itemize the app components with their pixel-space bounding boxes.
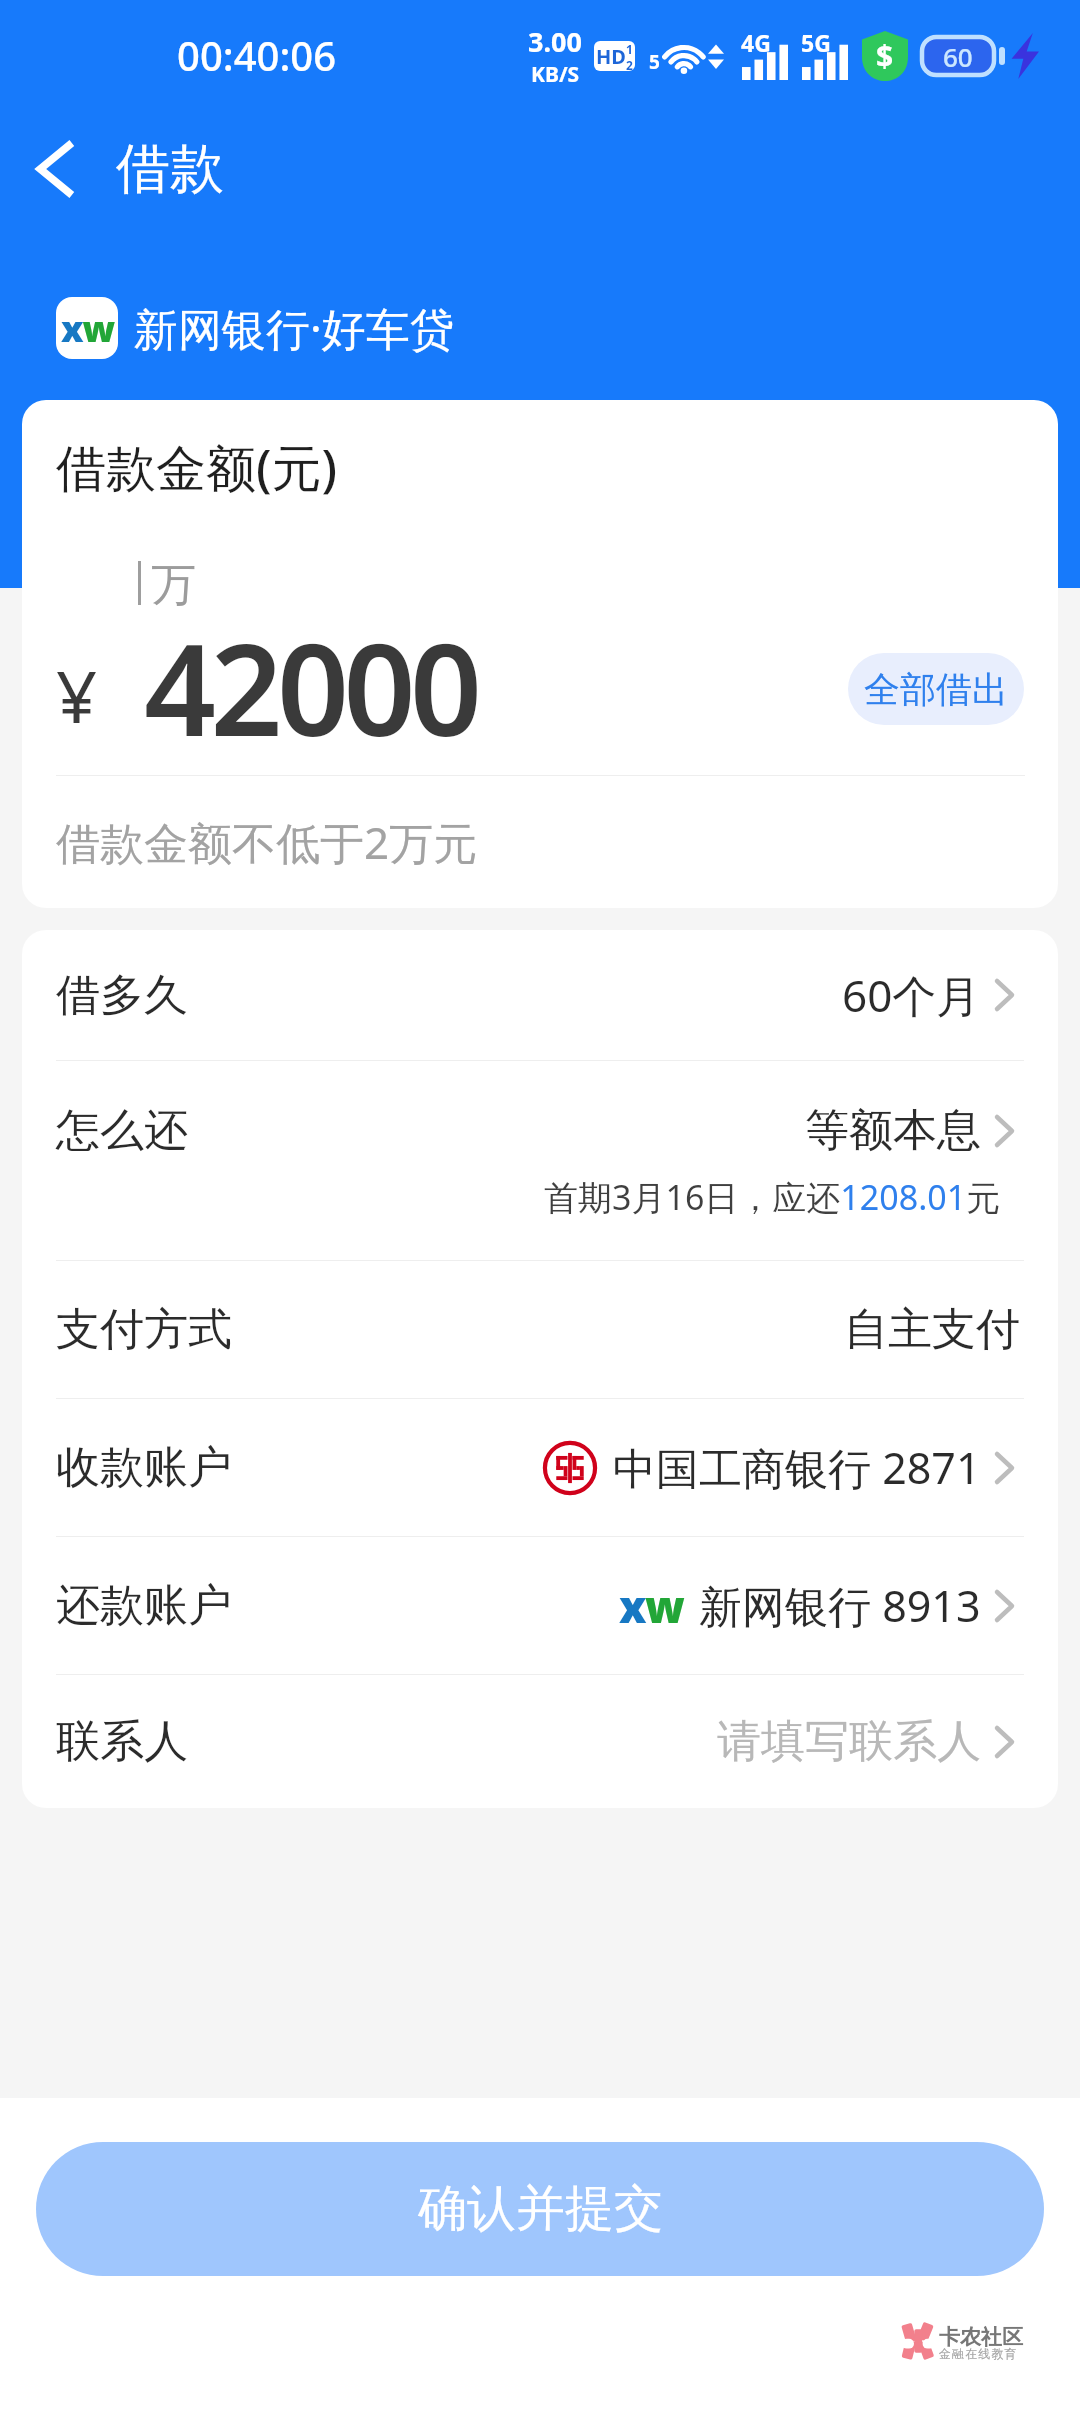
staticText: xw [61,304,114,353]
staticText: 60个月 [842,965,981,1025]
staticText: HD [596,43,626,70]
staticText: 5G [801,27,831,58]
staticText: 万 [151,557,196,614]
staticText: 2 [626,57,633,71]
staticText: 自主支付 [844,1302,1020,1357]
button[interactable]: 确认并提交 [36,2142,1044,2276]
staticText: 借款 [116,135,224,203]
staticText: 还款账户 [56,1578,232,1633]
staticText: 卡农社区 [939,2324,1023,2350]
button[interactable]: 借多久 [56,930,1024,1060]
staticText: 3.00 [528,23,582,60]
staticText: 60 [943,39,973,74]
button[interactable]: 全部借出 [848,653,1024,725]
button[interactable]: Back [0,105,112,233]
staticText: 确认并提交 [418,2178,663,2240]
staticText: 联系人 [56,1714,188,1769]
staticText: 借款金额(元) [56,433,338,501]
button[interactable]: 怎么还 [56,1061,1024,1260]
staticText: 收款账户 [56,1440,232,1495]
staticText: 00:40:06 [177,28,337,82]
staticText: $ [876,35,894,76]
staticText: 新网银行 8913 [699,1576,981,1635]
button[interactable]: 支付方式 [56,1261,1024,1398]
staticText: 4G [741,27,771,58]
button[interactable]: 还款账户 [56,1537,1024,1674]
staticText: 首期3月16日，应还1208.01元 [544,1174,1001,1220]
staticText: xw [619,1576,684,1635]
staticText: 等额本息 [805,1103,981,1158]
staticText: 5 [649,49,660,75]
staticText: 借多久 [56,968,188,1023]
button[interactable]: 收款账户 [56,1399,1024,1536]
staticText: 支付方式 [56,1302,232,1357]
staticText: 金融在线教育 [939,2346,1018,2361]
staticText: 借款金额不低于2万元 [56,812,478,872]
staticText: 怎么还 [56,1103,188,1158]
staticText: 请填写联系人 [717,1714,981,1769]
staticText: ¥ [56,646,98,744]
staticText: KB/S [531,60,580,89]
staticText: 1 [626,41,633,57]
staticText: 新网银行·好车贷 [134,298,454,358]
button[interactable]: 联系人 [56,1675,1024,1808]
staticText: 中国工商银行 2871 [613,1438,981,1497]
staticText: 42000 [144,601,477,771]
staticText: 全部借出 [864,667,1008,712]
